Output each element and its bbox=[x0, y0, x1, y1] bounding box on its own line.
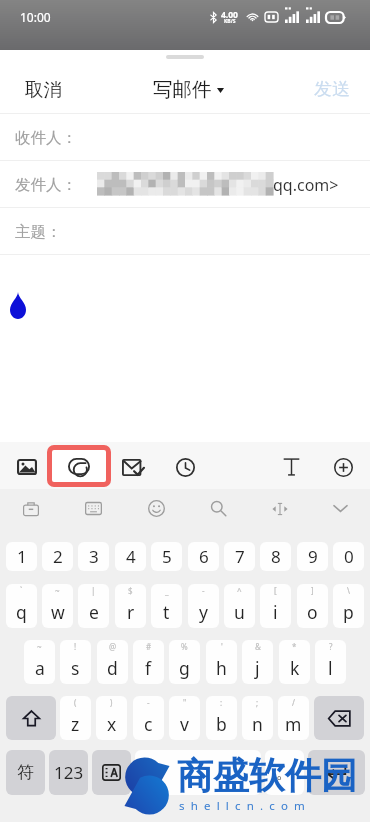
button[interactable]: Search bbox=[198, 492, 238, 525]
button[interactable]: 9 bbox=[297, 542, 328, 571]
button[interactable]: 2 bbox=[42, 542, 73, 571]
button[interactable]: - bbox=[133, 696, 164, 740]
staticText: o bbox=[307, 600, 318, 624]
button[interactable]: 7 bbox=[224, 542, 255, 571]
button[interactable]: ' bbox=[206, 640, 237, 684]
button[interactable]: _ bbox=[151, 584, 182, 628]
button[interactable]: 5 bbox=[151, 542, 182, 571]
button[interactable]: Insert image bbox=[6, 444, 48, 490]
staticText: x bbox=[107, 712, 117, 736]
staticText: 发送 bbox=[314, 78, 350, 101]
button[interactable]: ? bbox=[315, 640, 346, 684]
button[interactable]: ~ bbox=[42, 584, 73, 628]
button[interactable]: 发送 bbox=[296, 66, 370, 113]
staticText: 发件人： bbox=[15, 175, 77, 195]
staticText: 6 bbox=[199, 545, 209, 568]
button[interactable]: % bbox=[169, 640, 200, 684]
staticText: u bbox=[234, 600, 245, 624]
staticText: y bbox=[199, 600, 208, 624]
button[interactable]: Hide keyboard bbox=[320, 492, 360, 525]
button[interactable]: More options bbox=[322, 444, 364, 490]
button[interactable]: 。 bbox=[265, 750, 304, 795]
button[interactable]: 符 bbox=[6, 750, 45, 795]
staticText: k bbox=[290, 656, 300, 680]
staticText: - bbox=[202, 585, 205, 596]
staticText: 符 bbox=[17, 762, 34, 783]
button[interactable]: ! bbox=[60, 640, 91, 684]
button[interactable]: 0 bbox=[333, 542, 364, 571]
staticText: z bbox=[71, 712, 80, 736]
staticText: 4 bbox=[126, 545, 136, 568]
button[interactable]: 写邮件 bbox=[147, 71, 230, 108]
button[interactable]: : bbox=[206, 696, 237, 740]
button[interactable]: 取消 bbox=[0, 66, 80, 113]
staticText: \ bbox=[347, 585, 350, 596]
button[interactable]: 收件人： bbox=[0, 114, 370, 161]
button[interactable]: ( bbox=[60, 696, 91, 740]
button[interactable]: $ bbox=[115, 584, 146, 628]
button[interactable]: 8 bbox=[260, 542, 291, 571]
button[interactable]: ] bbox=[297, 584, 328, 628]
button[interactable]: | bbox=[78, 584, 109, 628]
button[interactable]: Clipboard bbox=[11, 492, 51, 525]
button[interactable]: Shift bbox=[6, 696, 56, 740]
button[interactable]: Schedule send bbox=[164, 444, 206, 490]
button[interactable]: Backspace bbox=[314, 696, 364, 740]
button[interactable]: Mail receipt bbox=[112, 444, 154, 490]
button[interactable]: 发件人： bbox=[0, 161, 370, 208]
staticText: 2 bbox=[53, 545, 63, 568]
button[interactable]: 1 bbox=[6, 542, 37, 571]
staticText: ' bbox=[221, 641, 223, 652]
button[interactable]: 主题： bbox=[0, 208, 370, 255]
staticText: ! bbox=[74, 641, 77, 652]
button[interactable]: Switch layout bbox=[73, 492, 113, 525]
staticText: 主题： bbox=[15, 222, 62, 242]
staticText: 9 bbox=[308, 545, 318, 568]
staticText: m bbox=[285, 712, 302, 736]
button[interactable]: Space bbox=[135, 750, 261, 795]
button[interactable]: " bbox=[169, 696, 200, 740]
button[interactable]: 4 bbox=[115, 542, 146, 571]
button[interactable]: / bbox=[278, 696, 309, 740]
staticText: [ bbox=[274, 585, 277, 596]
staticText: | bbox=[91, 585, 96, 596]
staticText: w bbox=[51, 600, 65, 624]
button[interactable]: Text format bbox=[270, 444, 312, 490]
staticText: d bbox=[107, 656, 118, 680]
button[interactable]: Input language bbox=[92, 750, 131, 795]
staticText: p bbox=[343, 600, 354, 624]
staticText: 8 bbox=[271, 545, 281, 568]
button[interactable]: ) bbox=[96, 696, 127, 740]
staticText: 0 bbox=[344, 545, 354, 568]
button[interactable]: ` bbox=[6, 584, 37, 628]
staticText: " bbox=[183, 697, 187, 708]
staticText: ? bbox=[329, 641, 333, 652]
button[interactable]: ~ bbox=[24, 640, 55, 684]
button[interactable]: - bbox=[188, 584, 219, 628]
staticText: 3 bbox=[89, 545, 99, 568]
staticText: 收件人： bbox=[15, 128, 77, 148]
staticText: 4.00 bbox=[221, 9, 238, 21]
button[interactable]: Move cursor bbox=[260, 492, 300, 525]
staticText: s bbox=[71, 656, 80, 680]
button[interactable]: 123 bbox=[49, 750, 88, 795]
button[interactable]: [ bbox=[260, 584, 291, 628]
staticText: 写邮件 bbox=[153, 77, 212, 102]
button[interactable]: ; bbox=[242, 696, 273, 740]
staticText: $ bbox=[128, 585, 133, 596]
staticText: @ bbox=[109, 641, 117, 652]
staticText: KB/S bbox=[224, 18, 236, 25]
button[interactable]: # bbox=[133, 640, 164, 684]
button[interactable]: * bbox=[279, 640, 310, 684]
button[interactable]: \ bbox=[333, 584, 364, 628]
button[interactable]: Emoji bbox=[136, 492, 176, 525]
button[interactable]: 6 bbox=[188, 542, 219, 571]
button[interactable]: @ bbox=[97, 640, 128, 684]
staticText: b bbox=[216, 712, 227, 736]
button[interactable]: Insert link bbox=[52, 450, 106, 482]
button[interactable]: & bbox=[242, 640, 273, 684]
button[interactable]: ^ bbox=[224, 584, 255, 628]
button[interactable]: Enter bbox=[308, 750, 365, 795]
button[interactable]: 3 bbox=[78, 542, 109, 571]
staticText: - bbox=[147, 697, 150, 708]
